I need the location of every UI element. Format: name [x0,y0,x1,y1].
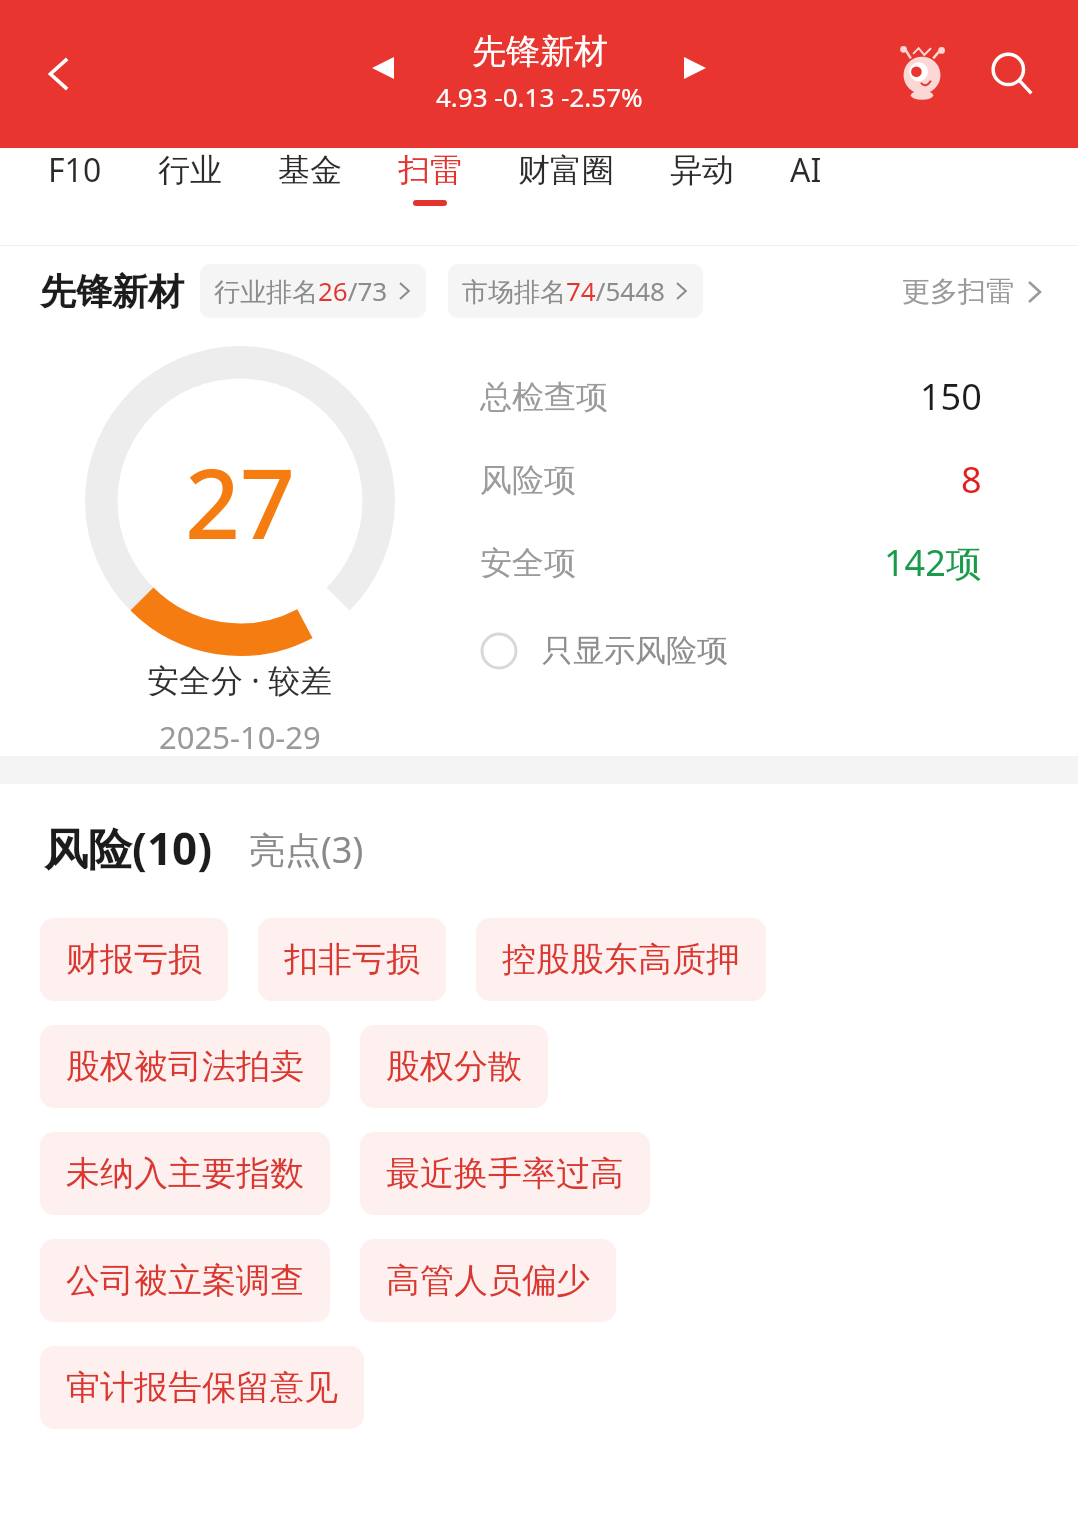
staticText: 最近换手率过高 [386,1152,624,1195]
staticText: 股权分散 [386,1045,522,1088]
staticText: 公司被立案调查 [66,1259,304,1302]
staticText: 150 [920,372,982,421]
staticText: 只显示风险项 [542,631,728,670]
staticText: 8 [961,455,982,504]
button[interactable]: 行业排名26/73 [200,264,426,318]
button[interactable]: Assistant [886,38,958,110]
staticText: 行业 [158,150,222,190]
button[interactable]: F10 [48,148,102,208]
button[interactable]: 股权被司法拍卖 [40,1025,330,1108]
staticText: 风险(10) [44,818,213,878]
button[interactable]: 扫雷 [398,150,462,206]
staticText: F10 [48,148,102,192]
staticText: 安全项 [480,543,576,583]
staticText: 扣非亏损 [284,938,420,981]
button[interactable]: 行业 [158,150,222,206]
staticText: 先锋新材 [472,30,608,73]
button[interactable]: 最近换手率过高 [360,1132,650,1215]
staticText: 27 [185,436,295,567]
button[interactable]: 只显示风险项 [480,627,728,674]
button[interactable]: 市场排名74/5448 [448,264,703,318]
button[interactable]: Previous stock [359,44,407,92]
staticText: 142项 [884,538,982,587]
staticText: 股权被司法拍卖 [66,1045,304,1088]
button[interactable]: 扣非亏损 [258,918,446,1001]
button[interactable]: 亮点(3) [249,825,364,878]
staticText: 市场排名74/5448 [462,273,665,309]
staticText: 总检查项 [480,377,608,417]
staticText: 安全分 · 较差 [147,658,333,702]
staticText: 行业排名26/73 [214,273,388,309]
button[interactable]: Search [976,38,1048,110]
button[interactable]: AI [790,148,822,208]
button[interactable]: 风险(10) [44,818,213,878]
staticText: 先锋新材 [40,269,184,314]
staticText: 更多扫雷 [902,274,1014,309]
staticText: 高管人员偏少 [386,1259,590,1302]
button[interactable]: Next stock [671,44,719,92]
staticText: 未纳入主要指数 [66,1152,304,1195]
staticText: 亮点(3) [249,825,364,874]
staticText: 2025-10-29 [159,716,321,756]
staticText: 审计报告保留意见 [66,1366,338,1409]
button[interactable]: 更多扫雷 [898,270,1048,313]
button[interactable]: 高管人员偏少 [360,1239,616,1322]
button[interactable]: Back [28,42,92,106]
button[interactable]: 异动 [670,150,734,206]
staticText: 控股股东高质押 [502,938,740,981]
staticText: 4.93 -0.13 -2.57% [436,79,643,114]
staticText: 财报亏损 [66,938,202,981]
button[interactable]: 公司被立案调查 [40,1239,330,1322]
button[interactable]: 财报亏损 [40,918,228,1001]
staticText: 风险项 [480,460,576,500]
staticText: 异动 [670,150,734,190]
button[interactable]: 控股股东高质押 [476,918,766,1001]
button[interactable]: 未纳入主要指数 [40,1132,330,1215]
button[interactable]: 基金 [278,150,342,206]
staticText: 扫雷 [398,150,462,190]
button[interactable]: 股权分散 [360,1025,548,1108]
staticText: 财富圈 [518,150,614,190]
button[interactable]: 审计报告保留意见 [40,1346,364,1429]
staticText: AI [790,148,822,192]
button[interactable]: 财富圈 [518,150,614,206]
staticText: 基金 [278,150,342,190]
